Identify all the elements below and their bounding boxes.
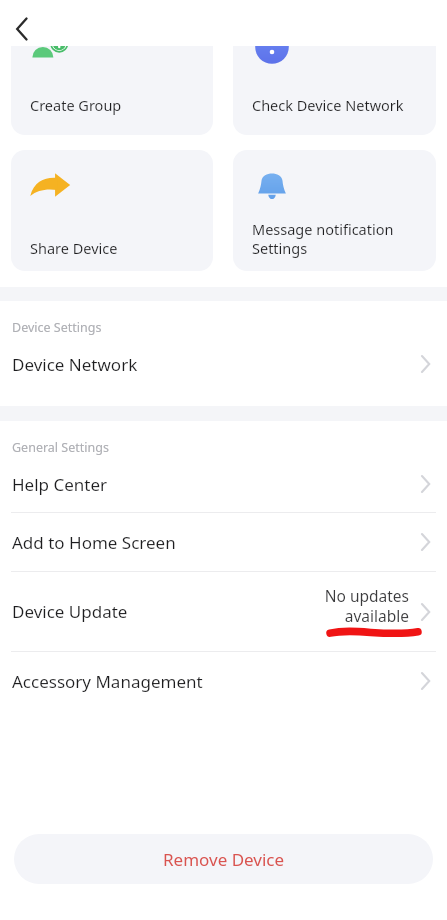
staticText: Share Device [30, 238, 118, 258]
button[interactable]: Remove Device [14, 834, 433, 884]
button[interactable]: Device Update [0, 572, 447, 651]
staticText: Device Settings [12, 319, 102, 336]
button[interactable]: Create Group [11, 46, 213, 135]
button[interactable]: Add to Home Screen [0, 513, 447, 571]
button[interactable]: Help Center [0, 456, 447, 512]
staticText: Check Device Network [252, 95, 404, 115]
button[interactable]: Back [4, 10, 42, 48]
button[interactable]: Accessory Management [0, 652, 447, 710]
staticText: Message notification Settings [252, 219, 394, 258]
staticText: Device Update [12, 600, 128, 623]
staticText: Accessory Management [12, 670, 203, 693]
staticText: Device Network [12, 353, 138, 376]
staticText: Remove Device [163, 848, 285, 871]
button[interactable]: Check Device Network [233, 46, 436, 135]
staticText: Help Center [12, 473, 108, 496]
staticText: Create Group [30, 95, 122, 115]
button[interactable]: Message notification Settings [233, 150, 436, 271]
button[interactable]: Share Device [11, 150, 213, 271]
staticText: Add to Home Screen [12, 531, 176, 554]
button[interactable]: Device Network [0, 336, 447, 392]
staticText: No updates available [324, 585, 409, 627]
staticText: General Settings [12, 439, 109, 456]
